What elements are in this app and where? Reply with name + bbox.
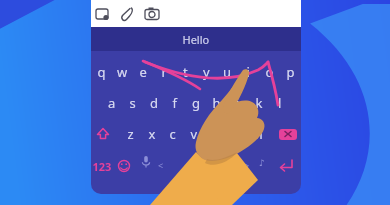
button[interactable]: Swipe keyboard preview xyxy=(0,0,390,205)
